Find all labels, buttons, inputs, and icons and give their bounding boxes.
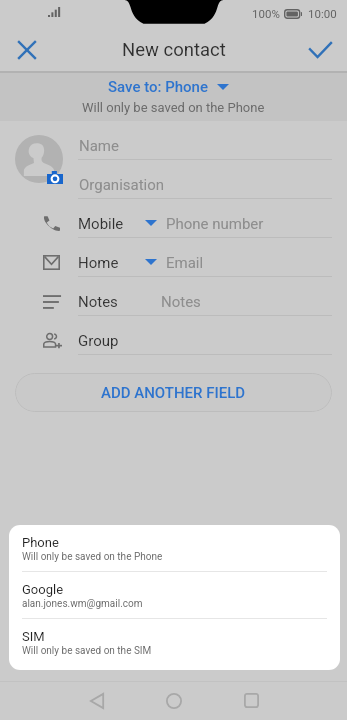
button[interactable]: Save to: Phone [0, 73, 347, 121]
button[interactable]: Google [9, 572, 340, 619]
staticText: 100% [252, 7, 280, 20]
staticText: Notes [78, 293, 118, 311]
staticText: Email [166, 254, 204, 272]
staticText: New contact [122, 39, 226, 61]
staticText: Group [78, 332, 119, 350]
staticText: Home [78, 254, 119, 272]
button[interactable]: Group [0, 316, 347, 355]
button[interactable]: Phone [9, 525, 340, 572]
button[interactable]: Name [78, 121, 332, 160]
button[interactable]: Home [78, 254, 119, 272]
other: Phone type [145, 220, 157, 226]
button[interactable]: Home [0, 238, 347, 277]
staticText: Phone [22, 535, 59, 550]
staticText: SIM [22, 629, 45, 644]
button[interactable]: Mobile [78, 215, 124, 233]
staticText: Google [22, 582, 64, 597]
staticText: ADD ANOTHER FIELD [101, 384, 246, 402]
button[interactable]: Notes [0, 277, 347, 316]
button[interactable]: Close [11, 34, 42, 65]
staticText: 10:00 [308, 7, 337, 20]
button[interactable]: Save [305, 34, 336, 65]
button[interactable]: Home [150, 681, 198, 720]
button[interactable]: SIM [9, 619, 340, 666]
staticText: Notes [161, 293, 201, 311]
staticText: Will only be saved on the SIM [22, 645, 152, 657]
staticText: Will only be saved on the Phone [82, 100, 265, 115]
button[interactable]: Recents [227, 681, 275, 720]
staticText: Save to: Phone [108, 78, 208, 96]
staticText: Will only be saved on the Phone [22, 551, 163, 563]
button[interactable]: Back [73, 681, 121, 720]
staticText: Organisation [79, 176, 165, 194]
button[interactable]: Organisation [78, 160, 332, 199]
staticText: alan.jones.wm@gmail.com [22, 598, 143, 610]
button[interactable]: Mobile [0, 199, 347, 238]
staticText: Name [79, 137, 119, 155]
staticText: Phone number [166, 215, 264, 233]
button[interactable]: ADD ANOTHER FIELD [15, 373, 332, 412]
staticText: Mobile [78, 215, 124, 233]
button[interactable]: Add photo [15, 135, 63, 183]
other: Email type [145, 259, 157, 265]
